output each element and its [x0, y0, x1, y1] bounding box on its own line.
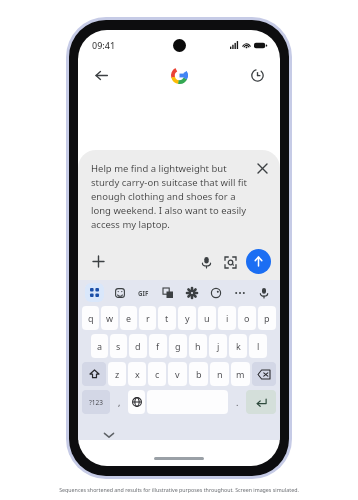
button[interactable]: e — [120, 306, 137, 330]
button[interactable]: v — [168, 362, 187, 386]
button[interactable]: r — [139, 306, 156, 330]
button[interactable]: History — [245, 63, 269, 87]
button[interactable]: s — [110, 334, 127, 358]
button[interactable]: k — [229, 334, 247, 358]
staticText: p — [264, 312, 270, 324]
button[interactable]: m — [231, 362, 250, 386]
staticText: x — [135, 368, 140, 380]
staticText: u — [204, 312, 210, 324]
staticText: a — [97, 340, 103, 352]
button[interactable]: Back — [89, 63, 113, 87]
button[interactable]: j — [209, 334, 227, 358]
staticText: Sequences shortened and results for illu… — [0, 486, 358, 493]
staticText: ?123 — [89, 398, 103, 407]
staticText: , — [118, 396, 121, 408]
button[interactable]: GIF — [134, 283, 153, 302]
staticText: b — [196, 368, 202, 380]
button[interactable]: Send — [246, 249, 271, 274]
staticText: t — [165, 312, 169, 324]
staticText: q — [88, 312, 94, 324]
button[interactable]: h — [189, 334, 207, 358]
staticText: w — [106, 312, 114, 324]
button[interactable]: g — [169, 334, 187, 358]
button[interactable]: Google Lens — [220, 252, 240, 272]
staticText: e — [126, 312, 132, 324]
button[interactable]: z — [108, 362, 126, 386]
button[interactable]: Clear — [253, 159, 271, 177]
button[interactable]: Translate — [158, 283, 177, 302]
staticText: k — [236, 340, 241, 352]
button[interactable]: Settings — [182, 283, 201, 302]
button[interactable]: Language — [128, 390, 145, 414]
button[interactable]: f — [149, 334, 167, 358]
button[interactable]: Emoji — [110, 283, 129, 302]
staticText: v — [175, 368, 180, 380]
staticText: z — [115, 368, 120, 380]
button[interactable]: t — [158, 306, 176, 330]
staticText: Help me find a lightweight but sturdy ca… — [91, 162, 249, 231]
button[interactable]: Backspace — [252, 362, 276, 386]
staticText: g — [175, 340, 181, 352]
button[interactable]: Comma — [112, 388, 127, 416]
staticText: s — [116, 340, 121, 352]
staticText: h — [195, 340, 201, 352]
button[interactable]: Add — [88, 251, 108, 271]
button[interactable]: d — [129, 334, 147, 358]
staticText: c — [155, 368, 160, 380]
staticText: y — [185, 312, 190, 324]
button[interactable]: y — [178, 306, 196, 330]
staticText: o — [244, 312, 250, 324]
button[interactable]: w — [101, 306, 118, 330]
staticText: r — [146, 312, 150, 324]
button[interactable]: o — [238, 306, 256, 330]
staticText: d — [135, 340, 141, 352]
button[interactable]: Themes — [206, 283, 225, 302]
staticText: i — [226, 312, 229, 324]
button[interactable]: b — [189, 362, 208, 386]
button[interactable]: x — [128, 362, 146, 386]
staticText: f — [156, 340, 160, 352]
button[interactable]: q — [82, 306, 99, 330]
staticText: j — [217, 340, 220, 352]
button[interactable]: Voice input — [254, 283, 273, 302]
staticText: 09:41 — [92, 39, 116, 51]
staticText: m — [236, 368, 245, 380]
button[interactable]: n — [210, 362, 229, 386]
staticText: . — [236, 396, 239, 408]
staticText: GIF — [138, 289, 149, 297]
staticText: l — [257, 340, 260, 352]
button[interactable]: Keyboard modes — [85, 283, 104, 302]
button[interactable]: Voice search — [196, 252, 216, 272]
button[interactable]: More — [230, 283, 249, 302]
button[interactable]: a — [91, 334, 108, 358]
button[interactable]: Collapse keyboard — [100, 426, 118, 444]
button[interactable]: Period — [230, 388, 245, 416]
button[interactable]: l — [249, 334, 267, 358]
button[interactable]: Enter — [246, 390, 276, 414]
button[interactable]: u — [198, 306, 216, 330]
button[interactable]: ?123 — [82, 390, 110, 414]
button[interactable]: p — [258, 306, 276, 330]
button[interactable]: i — [218, 306, 236, 330]
button[interactable]: c — [148, 362, 166, 386]
staticText: n — [217, 368, 223, 380]
button[interactable]: Shift — [82, 362, 106, 386]
